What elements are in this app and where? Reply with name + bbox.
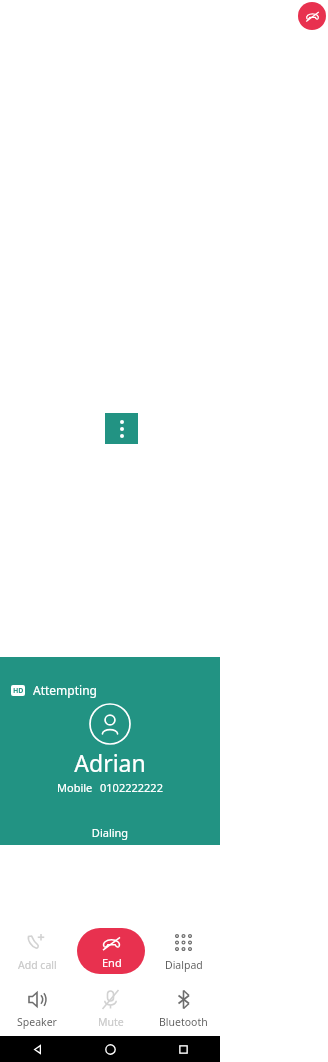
button[interactable]: Dialpad [147,930,220,972]
staticText: Mobile [57,780,93,795]
staticText: HD [13,686,24,696]
button[interactable]: End call [298,2,326,30]
button[interactable]: End [77,928,145,974]
staticText: Dialing [0,825,220,840]
button[interactable]: Back [0,1036,74,1062]
staticText: Dialpad [165,958,203,972]
staticText: Adrian [0,747,220,778]
button[interactable]: Recents [147,1036,220,1062]
staticText: 0102222222 [100,780,163,795]
button[interactable]: Home [74,1036,147,1062]
button[interactable]: Add call [0,930,74,972]
staticText: Mute [98,1015,124,1029]
button[interactable]: More options [105,413,138,444]
button[interactable]: Speaker [0,987,74,1029]
staticText: Add call [18,958,57,972]
staticText: Attempting [33,682,97,698]
button[interactable]: Mute [74,987,147,1029]
staticText: Speaker [17,1015,57,1029]
button[interactable]: Bluetooth [147,987,220,1029]
staticText: Bluetooth [159,1015,208,1029]
staticText: End [102,955,122,970]
button[interactable]: HD [0,657,220,845]
